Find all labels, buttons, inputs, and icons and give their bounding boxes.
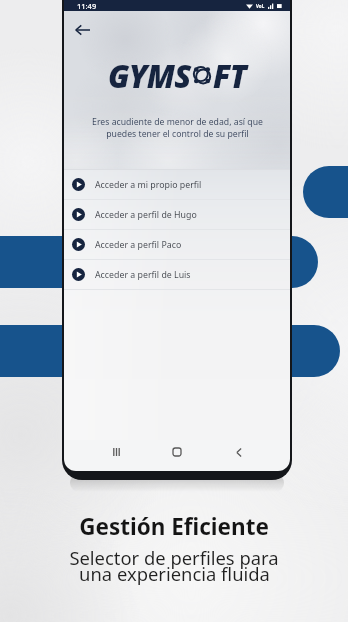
staticText: Eres acudiente de menor de edad, así que…	[92, 116, 263, 140]
button[interactable]: Recents	[106, 442, 126, 462]
button[interactable]: Acceder a mi propio perfil	[64, 170, 290, 199]
staticText: Acceder a mi propio perfil	[95, 179, 202, 191]
staticText: GYMS	[108, 55, 191, 97]
staticText: Selector de perfiles para	[69, 545, 279, 570]
button[interactable]: Home	[167, 442, 187, 462]
button[interactable]: Back	[229, 442, 249, 462]
staticText: Acceder a perfil de Luis	[95, 269, 191, 281]
staticText: Acceder a perfil de Hugo	[95, 209, 197, 221]
staticText: Gestión Eficiente	[79, 511, 269, 542]
button[interactable]: Acceder a perfil de Hugo	[64, 200, 290, 229]
staticText: Acceder a perfil Paco	[95, 239, 182, 251]
staticText: una experiencia fluida	[79, 561, 270, 586]
button[interactable]: Acceder a perfil de Luis	[64, 260, 290, 289]
staticText: 11:49	[77, 1, 97, 11]
staticText: FT	[213, 55, 247, 97]
staticText: VoL	[256, 3, 265, 9]
button[interactable]: Back	[69, 17, 95, 43]
button[interactable]: Acceder a perfil Paco	[64, 230, 290, 259]
